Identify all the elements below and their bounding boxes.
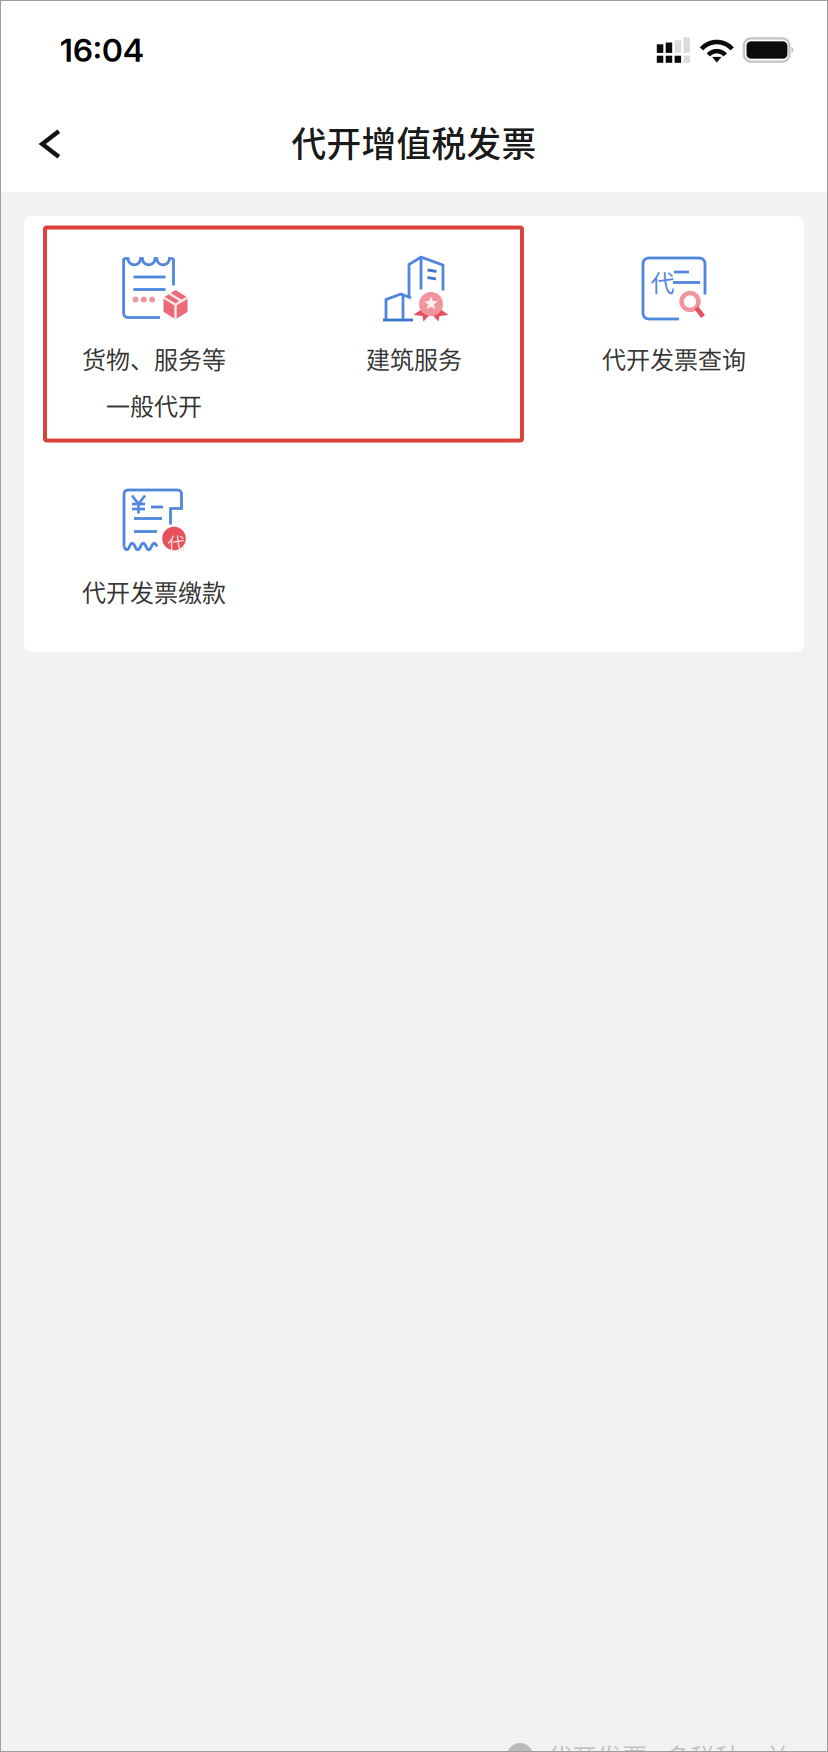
staticText: 代 [167, 530, 184, 555]
button[interactable]: 代 [544, 216, 804, 449]
staticText: 代开发票 多税种一并 [547, 1738, 790, 1752]
staticText: 货物、服务等 [82, 341, 226, 376]
staticText: 代开增值税发票 [291, 117, 536, 167]
staticText: 代开发票缴款 [82, 574, 226, 609]
button[interactable]: 货物、服务等 [24, 216, 284, 449]
staticText: 16:04 [60, 31, 144, 69]
staticText: 代开发票查询 [602, 341, 746, 376]
staticText: 一般代开 [106, 388, 202, 423]
staticText: 建筑服务 [366, 341, 462, 376]
button[interactable]: 建筑服务 [284, 216, 544, 449]
button[interactable]: 代 [24, 449, 284, 652]
staticText: 代 [650, 264, 674, 299]
button[interactable]: 返回 [0, 95, 90, 185]
